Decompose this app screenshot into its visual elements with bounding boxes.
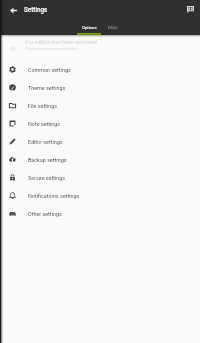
staticText: Options — [82, 25, 97, 30]
button[interactable]: Secure settings — [0, 169, 200, 187]
button[interactable]: Theme settings — [0, 79, 200, 97]
staticText: Notifications settings — [28, 193, 80, 199]
staticText: Theme settings — [28, 85, 66, 91]
button[interactable]: Common settings — [0, 61, 200, 79]
button[interactable]: Editor settings — [0, 133, 200, 151]
button[interactable]: Note settings — [0, 115, 200, 133]
staticText: Common settings — [28, 67, 71, 73]
button[interactable]: Manual — [181, 0, 199, 18]
staticText: Pro edition has been activated — [25, 39, 98, 45]
staticText: Secure settings — [28, 175, 66, 181]
staticText: Pro features now available — [25, 46, 77, 51]
button[interactable]: Backup settings — [0, 151, 200, 169]
staticText: Backup settings — [28, 157, 67, 163]
button[interactable]: Other settings — [0, 205, 200, 223]
button[interactable]: FAQs — [101, 20, 125, 35]
button[interactable]: Pro edition has been activated — [0, 35, 200, 61]
staticText: Editor settings — [28, 139, 63, 145]
button[interactable]: Notifications settings — [0, 187, 200, 205]
button[interactable]: Options — [77, 20, 101, 35]
staticText: FAQs — [108, 25, 118, 30]
staticText: Other settings — [28, 211, 62, 217]
staticText: File settings — [28, 103, 58, 109]
button[interactable]: Navigate up — [4, 1, 22, 19]
staticText: Note settings — [28, 121, 61, 127]
button[interactable]: File settings — [0, 97, 200, 115]
staticText: Settings — [24, 6, 48, 13]
